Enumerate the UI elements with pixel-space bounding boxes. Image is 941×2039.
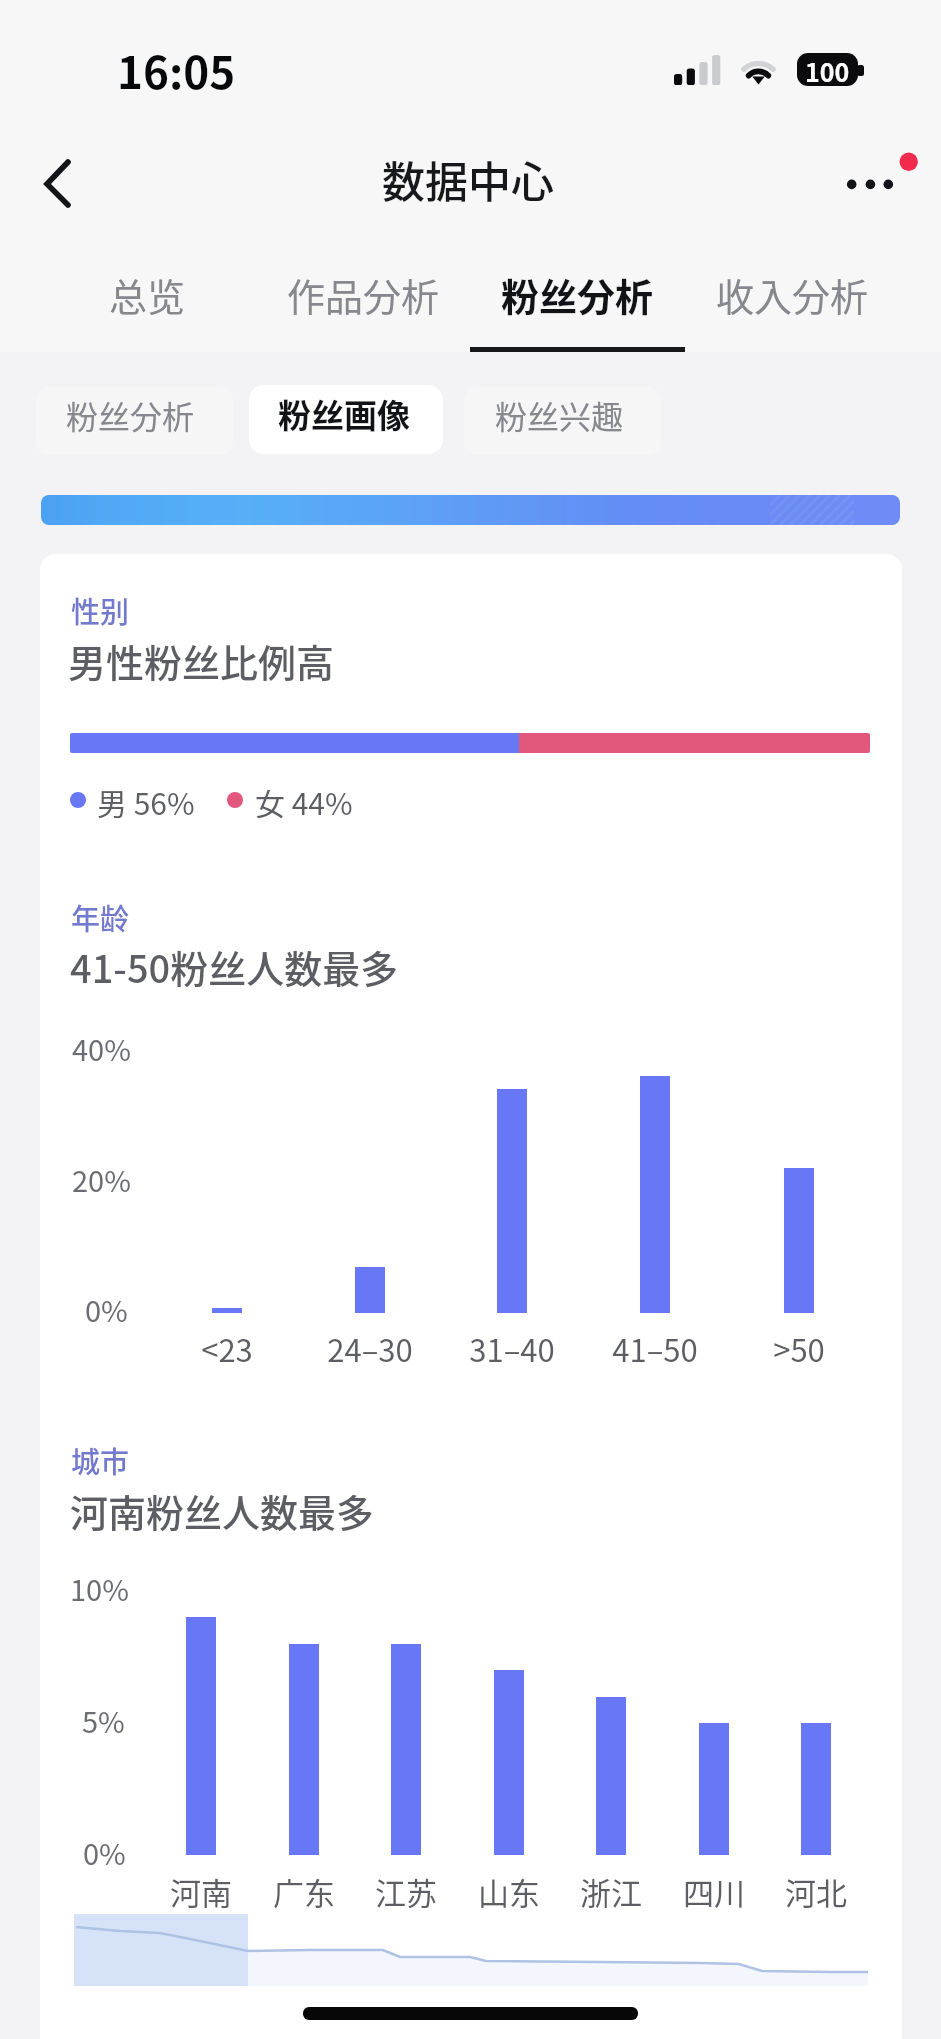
- staticText: 10%: [70, 1567, 129, 1609]
- staticText: 20%: [72, 1158, 131, 1200]
- staticText: 城市: [71, 1439, 130, 1481]
- staticText: <23: [201, 1326, 253, 1370]
- staticText: 5%: [82, 1699, 125, 1741]
- staticText: 男性粉丝比例高: [68, 633, 335, 688]
- staticText: 0%: [83, 1831, 126, 1873]
- staticText: 粉丝分析: [501, 267, 654, 322]
- staticText: 总览: [109, 267, 186, 322]
- staticText: 河北: [785, 1869, 847, 1913]
- button[interactable]: 粉丝画像: [249, 385, 443, 454]
- staticText: 24–30: [327, 1326, 413, 1370]
- staticText: >50: [773, 1326, 825, 1370]
- staticText: 江苏: [375, 1869, 437, 1913]
- staticText: 粉丝兴趣: [495, 392, 624, 438]
- staticText: 16:05: [117, 38, 236, 102]
- staticText: 收入分析: [716, 267, 869, 322]
- staticText: 男 56%: [97, 780, 195, 823]
- staticText: 广东: [273, 1869, 335, 1913]
- button[interactable]: 总览: [40, 258, 255, 348]
- button[interactable]: Back: [22, 148, 92, 218]
- staticText: 40%: [72, 1027, 131, 1069]
- staticText: 粉丝画像: [278, 390, 410, 438]
- staticText: 31–40: [469, 1326, 555, 1370]
- button[interactable]: Chart range selector: [74, 1914, 900, 1986]
- button[interactable]: More options: [820, 140, 930, 220]
- button[interactable]: 粉丝分析: [36, 387, 233, 455]
- button[interactable]: 粉丝兴趣: [464, 387, 661, 455]
- staticText: 100: [805, 53, 850, 86]
- button[interactable]: 收入分析: [685, 258, 900, 348]
- staticText: 性别: [71, 589, 130, 631]
- staticText: 河南粉丝人数最多: [70, 1483, 375, 1538]
- staticText: 0%: [85, 1288, 128, 1330]
- staticText: 女 44%: [255, 780, 353, 823]
- staticText: 四川: [683, 1869, 745, 1913]
- staticText: 41-50粉丝人数最多: [70, 939, 399, 994]
- button[interactable]: 作品分析: [256, 258, 471, 348]
- staticText: 山东: [478, 1869, 540, 1913]
- staticText: 河南: [170, 1869, 232, 1913]
- staticText: 粉丝分析: [66, 392, 195, 438]
- staticText: 数据中心: [382, 148, 554, 210]
- button[interactable]: 粉丝分析: [470, 258, 685, 348]
- staticText: 作品分析: [287, 267, 440, 322]
- staticText: 年龄: [71, 896, 130, 938]
- staticText: 浙江: [580, 1869, 642, 1913]
- staticText: 41–50: [612, 1326, 698, 1370]
